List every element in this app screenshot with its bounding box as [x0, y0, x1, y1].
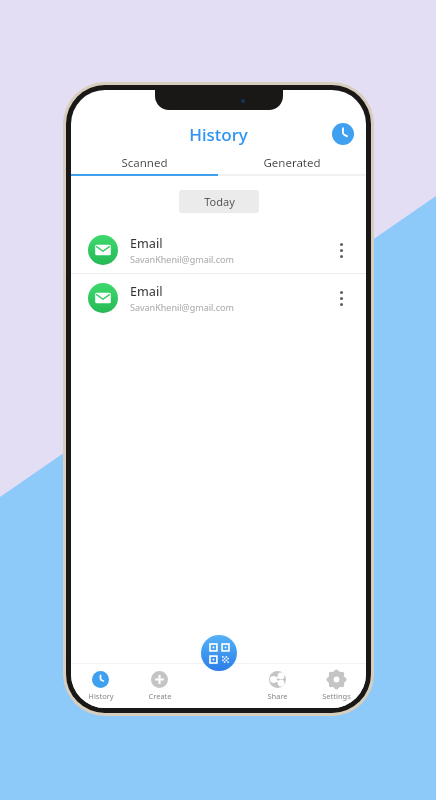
button[interactable]: Settings [307, 664, 366, 708]
staticText: Generated [263, 155, 321, 171]
button[interactable]: Scan QR code [201, 635, 237, 671]
button[interactable]: Generated [218, 152, 366, 174]
button[interactable]: More options [330, 232, 352, 268]
button[interactable]: Scanned [71, 152, 218, 174]
staticText: Settings [322, 691, 351, 701]
button[interactable]: Today [179, 190, 259, 213]
staticText: Email [130, 235, 163, 252]
staticText: SavanKhenil@gmail.com [130, 301, 234, 313]
button[interactable]: Email [71, 274, 366, 321]
staticText: SavanKhenil@gmail.com [130, 253, 234, 265]
staticText: Scanned [121, 155, 168, 171]
staticText: History [88, 691, 114, 701]
button[interactable]: History [332, 123, 354, 145]
staticText: Create [148, 691, 172, 701]
staticText: Share [267, 691, 288, 701]
button[interactable]: History [71, 664, 130, 708]
button[interactable]: More options [330, 280, 352, 316]
button[interactable]: Create [130, 664, 189, 708]
button[interactable]: Email [71, 226, 366, 273]
staticText: Today [204, 194, 235, 209]
staticText: History [189, 123, 248, 146]
button[interactable]: Share [248, 664, 307, 708]
staticText: Email [130, 283, 163, 300]
